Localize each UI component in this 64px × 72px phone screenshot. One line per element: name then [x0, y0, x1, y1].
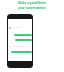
staticText: your conversations: [18, 6, 46, 10]
staticText: Make a good finish: [18, 1, 46, 5]
